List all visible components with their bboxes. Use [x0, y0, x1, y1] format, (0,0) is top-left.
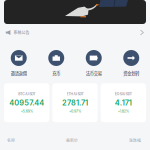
staticText: 系统公告: [14, 30, 30, 35]
button[interactable]: 邀请返佣: [0, 50, 37, 76]
staticText: ETH/USDT: [66, 92, 83, 96]
staticText: +5.69%: [21, 109, 33, 113]
staticText: 2781.71: [62, 98, 88, 107]
button[interactable]: ETH/USDT: [52, 83, 98, 122]
staticText: 涨跌幅: [129, 137, 141, 143]
staticText: 40957.44: [9, 98, 44, 107]
button[interactable]: EOS/USDT: [101, 83, 146, 122]
staticText: 资金划转: [123, 70, 139, 76]
staticText: +1.82%: [118, 109, 129, 113]
button[interactable]: 系统公告: [0, 24, 150, 41]
button[interactable]: BTC/USDT: [4, 83, 49, 122]
staticText: 4.171: [115, 98, 132, 107]
staticText: +0.97%: [69, 109, 81, 113]
staticText: 法币交易: [86, 70, 102, 76]
button[interactable]: 法币交易: [75, 50, 112, 76]
button[interactable]: 充币: [37, 50, 75, 76]
staticText: 邀请返佣: [11, 70, 27, 76]
staticText: BTC/USDT: [18, 92, 35, 96]
button[interactable]: 资金划转: [112, 50, 150, 76]
staticText: 名称: [7, 137, 15, 143]
staticText: 最新价: [66, 137, 78, 143]
staticText: EOS/USDT: [115, 92, 132, 96]
staticText: 充币: [52, 70, 60, 76]
